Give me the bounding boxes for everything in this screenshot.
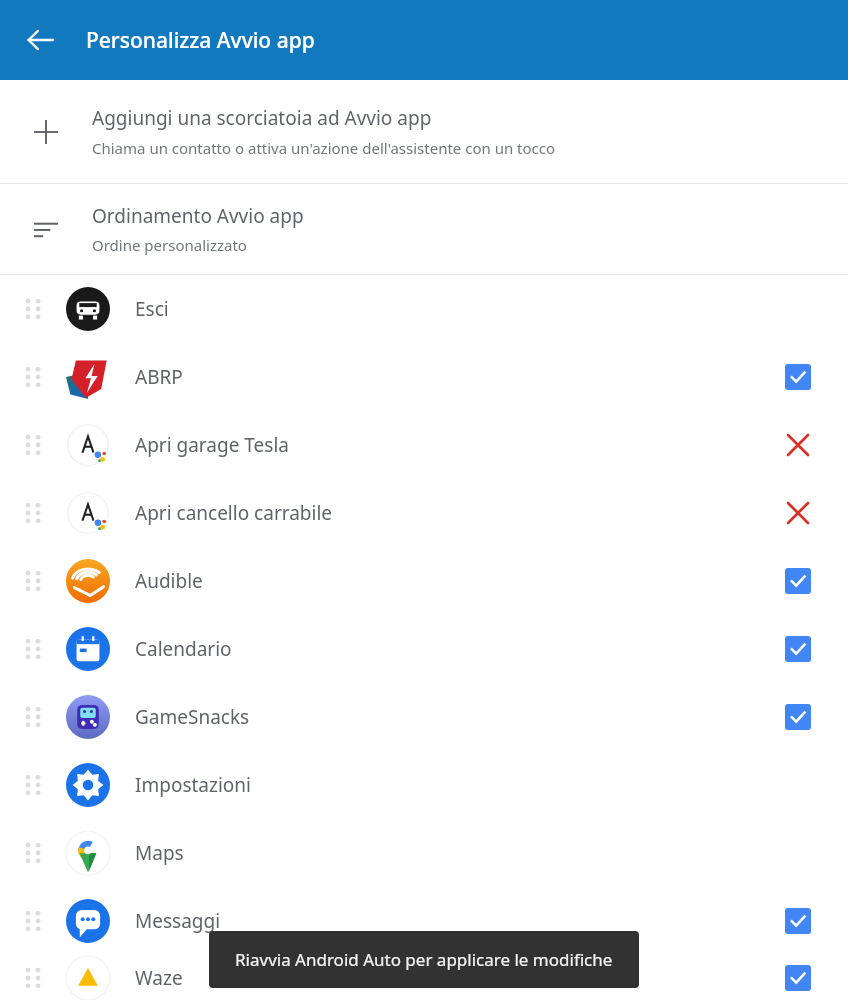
button[interactable]: Esci xyxy=(0,275,848,343)
button[interactable]: Maps xyxy=(0,819,848,887)
staticText: GameSnacks xyxy=(135,704,250,730)
button[interactable]: Enabled xyxy=(785,908,811,934)
staticText: Personalizza Avvio app xyxy=(86,26,315,55)
button[interactable]: Remove xyxy=(784,499,812,527)
staticText: Impostazioni xyxy=(135,772,251,798)
staticText: Audible xyxy=(135,568,203,594)
button[interactable]: Aggiungi una scorciatoia ad Avvio app xyxy=(0,80,848,183)
button[interactable]: Enabled xyxy=(785,704,811,730)
staticText: Aggiungi una scorciatoia ad Avvio app xyxy=(92,105,432,131)
staticText: Calendario xyxy=(135,636,232,662)
button[interactable]: Apri garage Tesla xyxy=(0,411,848,479)
button[interactable]: ABRP xyxy=(0,343,848,411)
staticText: Riavvia Android Auto per applicare le mo… xyxy=(235,948,613,971)
button[interactable]: Riavvia Android Auto per applicare le mo… xyxy=(209,931,639,988)
staticText: Ordinamento Avvio app xyxy=(92,203,304,229)
button[interactable]: Remove xyxy=(784,431,812,459)
button[interactable]: Calendario xyxy=(0,615,848,683)
button[interactable]: Audible xyxy=(0,547,848,615)
button[interactable]: Enabled xyxy=(785,568,811,594)
button[interactable]: Enabled xyxy=(785,636,811,662)
staticText: Waze xyxy=(135,965,183,991)
button[interactable]: Apri cancello carrabile xyxy=(0,479,848,547)
button[interactable]: Impostazioni xyxy=(0,751,848,819)
button[interactable]: Messaggi xyxy=(0,887,848,955)
button[interactable]: Ordinamento Avvio app xyxy=(0,184,848,274)
staticText: Chiama un contatto o attiva un'azione de… xyxy=(92,138,556,158)
button[interactable]: Enabled xyxy=(785,965,811,991)
staticText: Ordine personalizzato xyxy=(92,235,247,255)
button[interactable]: GameSnacks xyxy=(0,683,848,751)
staticText: Maps xyxy=(135,840,184,866)
staticText: Messaggi xyxy=(135,908,221,934)
button[interactable]: Waze xyxy=(0,955,848,1000)
staticText: Esci xyxy=(135,296,169,322)
staticText: ABRP xyxy=(135,364,183,390)
button[interactable]: Back xyxy=(14,14,66,66)
button[interactable]: Enabled xyxy=(785,364,811,390)
staticText: Apri cancello carrabile xyxy=(135,500,333,526)
staticText: Apri garage Tesla xyxy=(135,432,289,458)
